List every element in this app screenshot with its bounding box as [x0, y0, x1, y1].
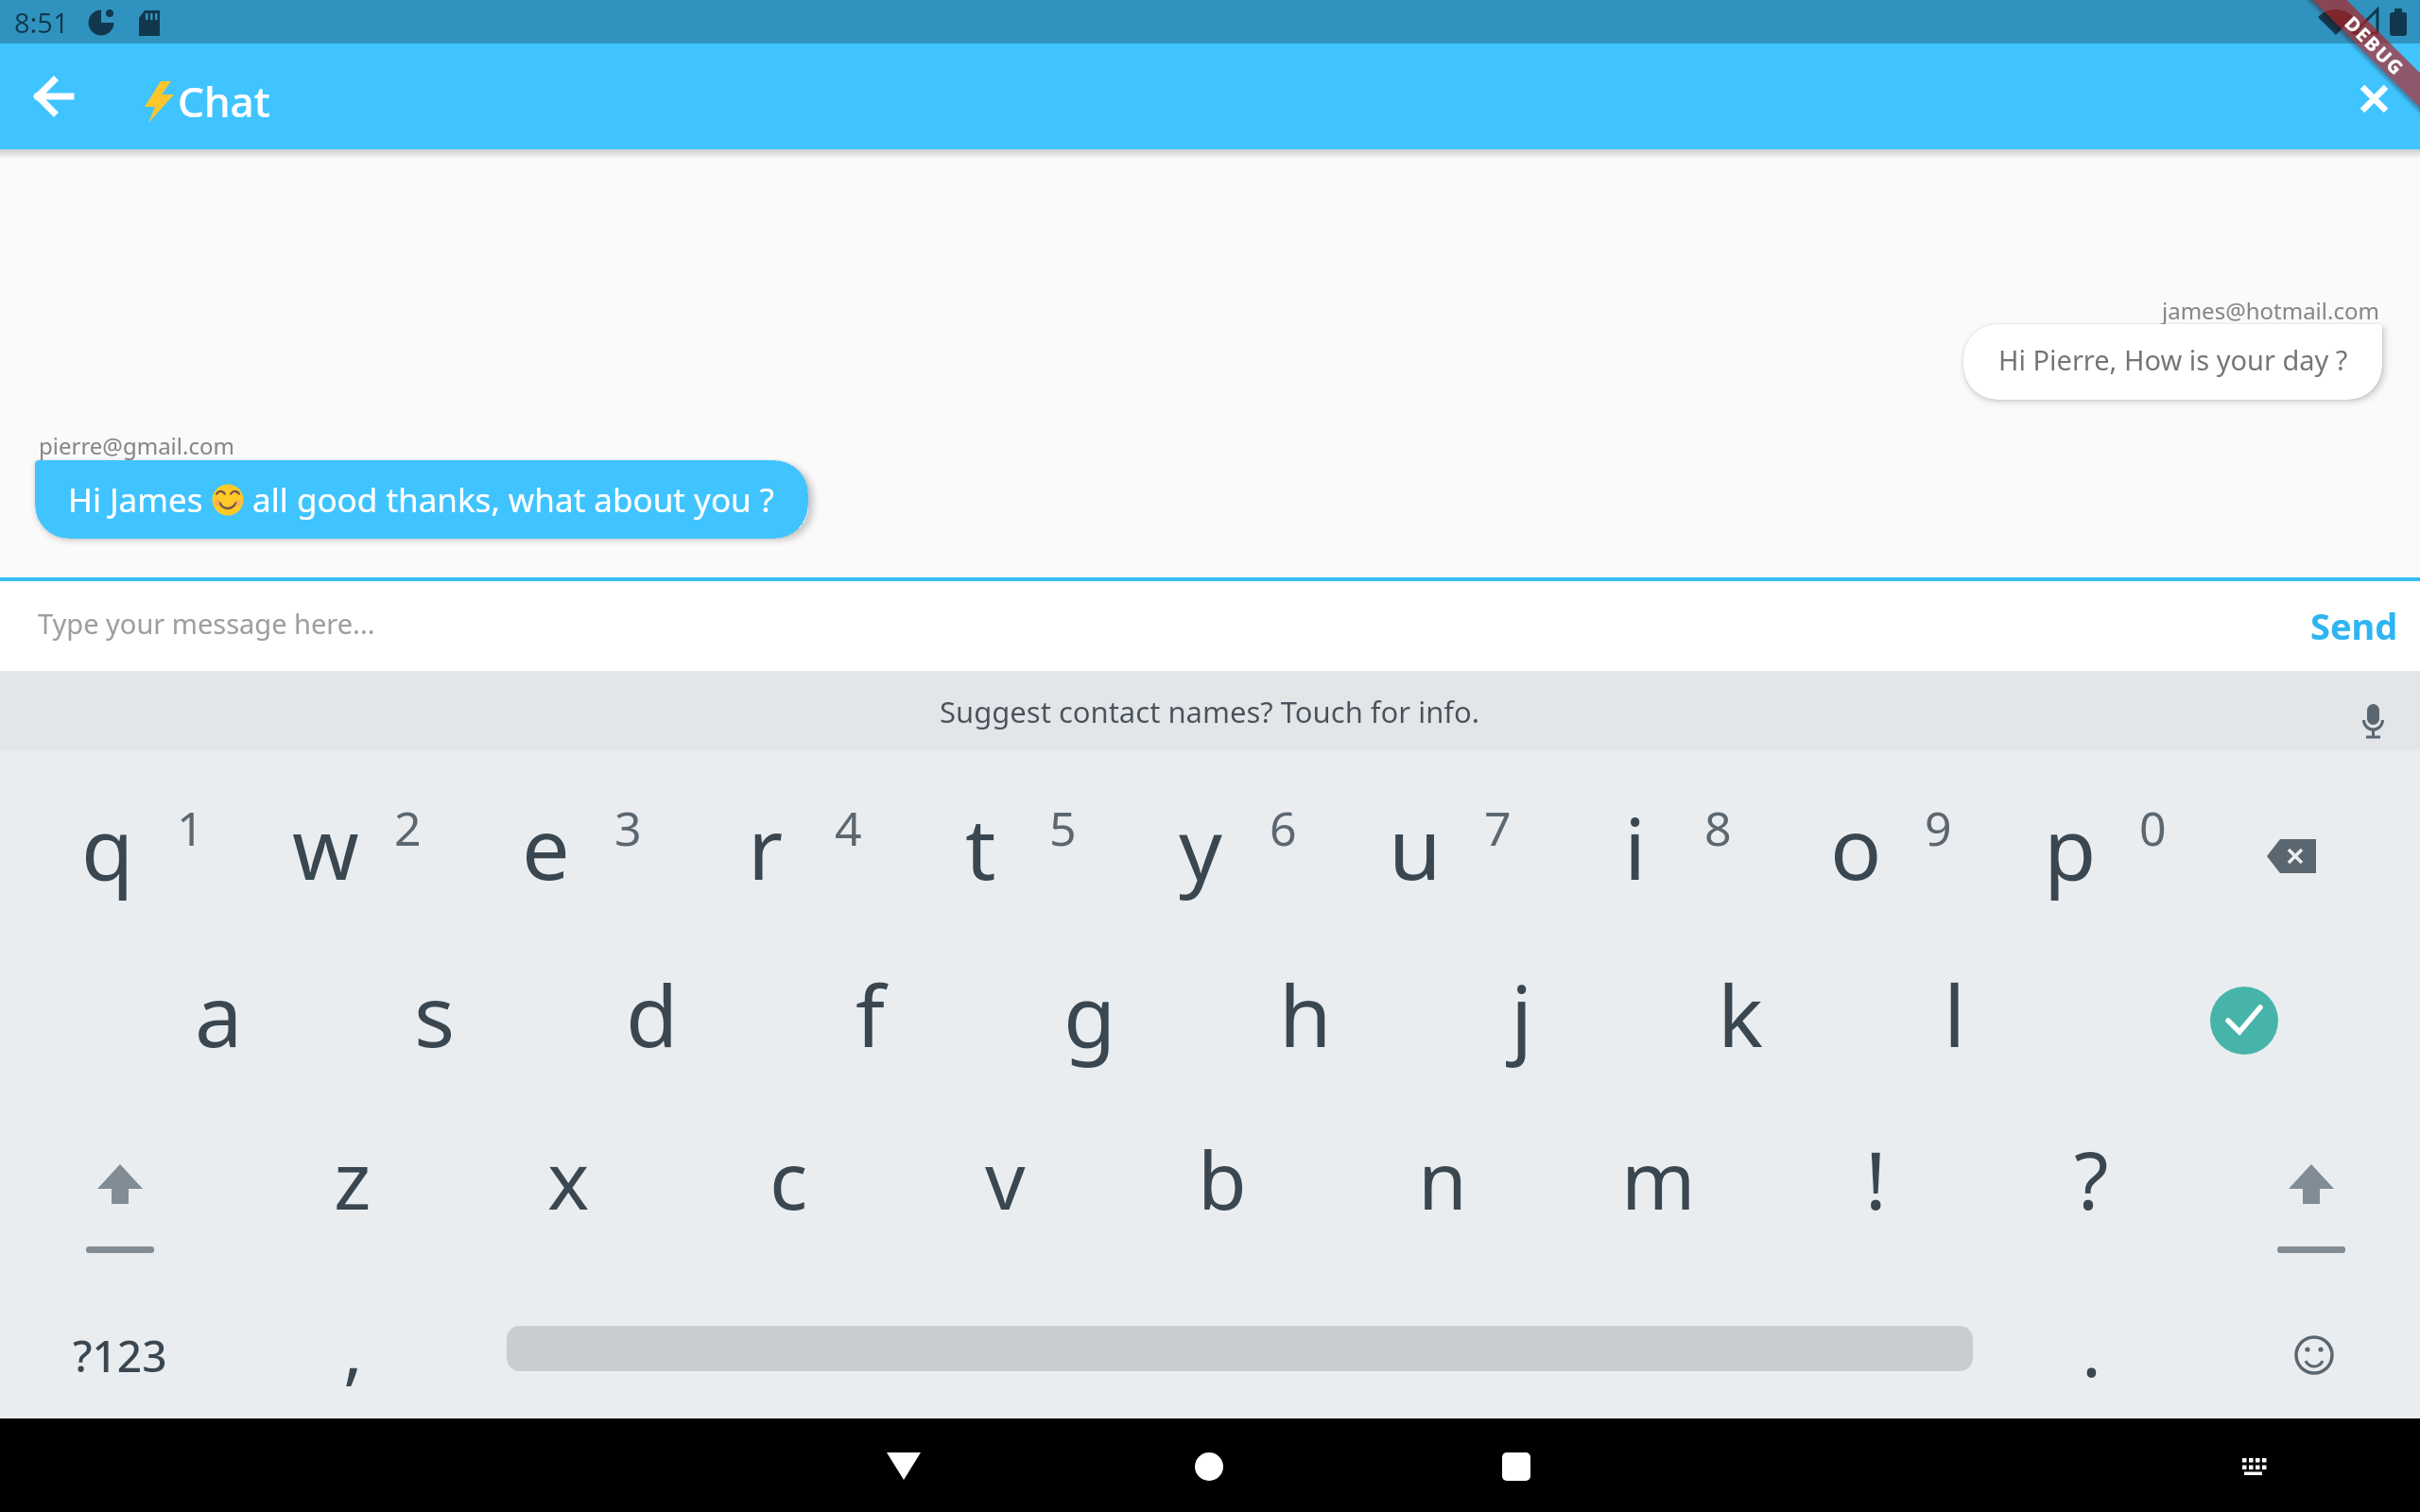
staticText: d	[626, 956, 679, 1073]
button[interactable]: d	[577, 938, 728, 1090]
button[interactable]	[2259, 824, 2325, 890]
staticText: Send	[2310, 601, 2398, 650]
button[interactable]: Send	[2115, 600, 2398, 651]
staticText: DEBUG	[2341, 10, 2410, 80]
button[interactable]: l	[1879, 938, 2031, 1090]
staticText: o	[1830, 789, 1882, 905]
button[interactable]: f	[794, 938, 945, 1090]
button[interactable]: ?	[2015, 1103, 2167, 1254]
staticText: ,	[343, 1298, 363, 1399]
staticText: 5	[1049, 796, 1077, 860]
staticText: y	[1179, 789, 1222, 905]
staticText: 7	[1484, 796, 1512, 860]
staticText: l	[1944, 956, 1966, 1073]
staticText: 1	[177, 796, 204, 860]
staticText: ?	[2074, 1125, 2109, 1232]
staticText: m	[1621, 1125, 1696, 1232]
button[interactable]: i	[1560, 771, 1711, 922]
staticText: p	[2044, 789, 2097, 905]
staticText: 8	[1704, 796, 1732, 860]
button[interactable]: q	[32, 771, 183, 922]
button[interactable]	[2231, 1446, 2274, 1487]
staticText: .	[2082, 1298, 2101, 1399]
button[interactable]	[8, 51, 98, 142]
staticText: all good thanks, what about you ?	[244, 477, 775, 523]
staticText: i	[1624, 789, 1647, 905]
button[interactable]: x	[493, 1103, 644, 1254]
staticText: 3	[614, 796, 642, 860]
staticText: w	[292, 789, 359, 905]
staticText: a	[195, 956, 243, 1073]
staticText: b	[1198, 1125, 1247, 1232]
button[interactable]: o	[1780, 771, 1931, 922]
staticText: f	[856, 956, 885, 1073]
staticText: pierre@gmail.com	[39, 430, 234, 461]
staticText: r	[748, 789, 784, 905]
staticText: u	[1389, 789, 1442, 905]
staticText: Suggest contact names? Touch for info.	[940, 692, 1480, 731]
button[interactable]	[2281, 1322, 2347, 1388]
staticText: Type your message here...	[38, 605, 375, 642]
button[interactable]: a	[143, 938, 294, 1090]
button[interactable]: b	[1147, 1103, 1298, 1254]
staticText: g	[1063, 956, 1116, 1073]
button[interactable]	[1469, 1427, 1564, 1503]
staticText: t	[965, 789, 996, 905]
staticText: 8:51	[14, 4, 69, 41]
staticText: x	[547, 1125, 590, 1232]
button[interactable]: ?123	[26, 1280, 215, 1431]
button[interactable]: s	[359, 938, 510, 1090]
button[interactable]: u	[1340, 771, 1491, 922]
button[interactable]: e	[470, 771, 621, 922]
button[interactable]	[2210, 987, 2278, 1055]
button[interactable]	[856, 1427, 951, 1503]
button[interactable]: w	[250, 771, 401, 922]
staticText: Hi James	[68, 477, 212, 523]
button[interactable]: t	[905, 771, 1056, 922]
button[interactable]: m	[1582, 1103, 1734, 1254]
button[interactable]: h	[1230, 938, 1381, 1090]
button[interactable]	[0, 671, 2420, 750]
button[interactable]: j	[1446, 938, 1598, 1090]
staticText: 2	[394, 796, 422, 860]
staticText: j	[1511, 956, 1533, 1073]
staticText: 4	[835, 796, 862, 860]
staticText: h	[1279, 956, 1332, 1073]
staticText: k	[1718, 956, 1764, 1073]
staticText: 0	[2139, 796, 2167, 860]
staticText: s	[414, 956, 456, 1073]
staticText: e	[522, 789, 570, 905]
button[interactable]	[1162, 1427, 1256, 1503]
button[interactable]	[82, 1155, 158, 1211]
button[interactable]	[2328, 53, 2419, 144]
button[interactable]: y	[1125, 771, 1276, 922]
staticText: james@hotmail.com	[2162, 295, 2379, 326]
button[interactable]	[2273, 1155, 2349, 1211]
staticText: q	[81, 789, 134, 905]
button[interactable]: v	[929, 1103, 1080, 1254]
staticText: Chat	[178, 73, 270, 129]
button[interactable]: c	[713, 1103, 864, 1254]
button[interactable]: p	[1995, 771, 2146, 922]
staticText: !	[1865, 1125, 1887, 1232]
button[interactable]: z	[277, 1103, 428, 1254]
staticText: 9	[1925, 796, 1952, 860]
staticText: z	[334, 1125, 372, 1232]
button[interactable]: !	[1800, 1103, 1951, 1254]
button[interactable]	[2344, 690, 2401, 750]
button[interactable]: g	[1014, 938, 1166, 1090]
staticText: n	[1418, 1125, 1467, 1232]
button[interactable]: ,	[315, 1273, 390, 1424]
button[interactable]: k	[1665, 938, 1816, 1090]
button[interactable]	[0, 581, 2420, 671]
staticText: ?123	[73, 1326, 167, 1385]
button[interactable]: .	[2053, 1273, 2129, 1424]
staticText: c	[769, 1125, 808, 1232]
staticText: 6	[1270, 796, 1297, 860]
staticText: Hi Pierre, How is your day ?	[1998, 341, 2348, 378]
button[interactable]: r	[690, 771, 841, 922]
staticText: v	[985, 1125, 1026, 1232]
button[interactable]: n	[1367, 1103, 1518, 1254]
